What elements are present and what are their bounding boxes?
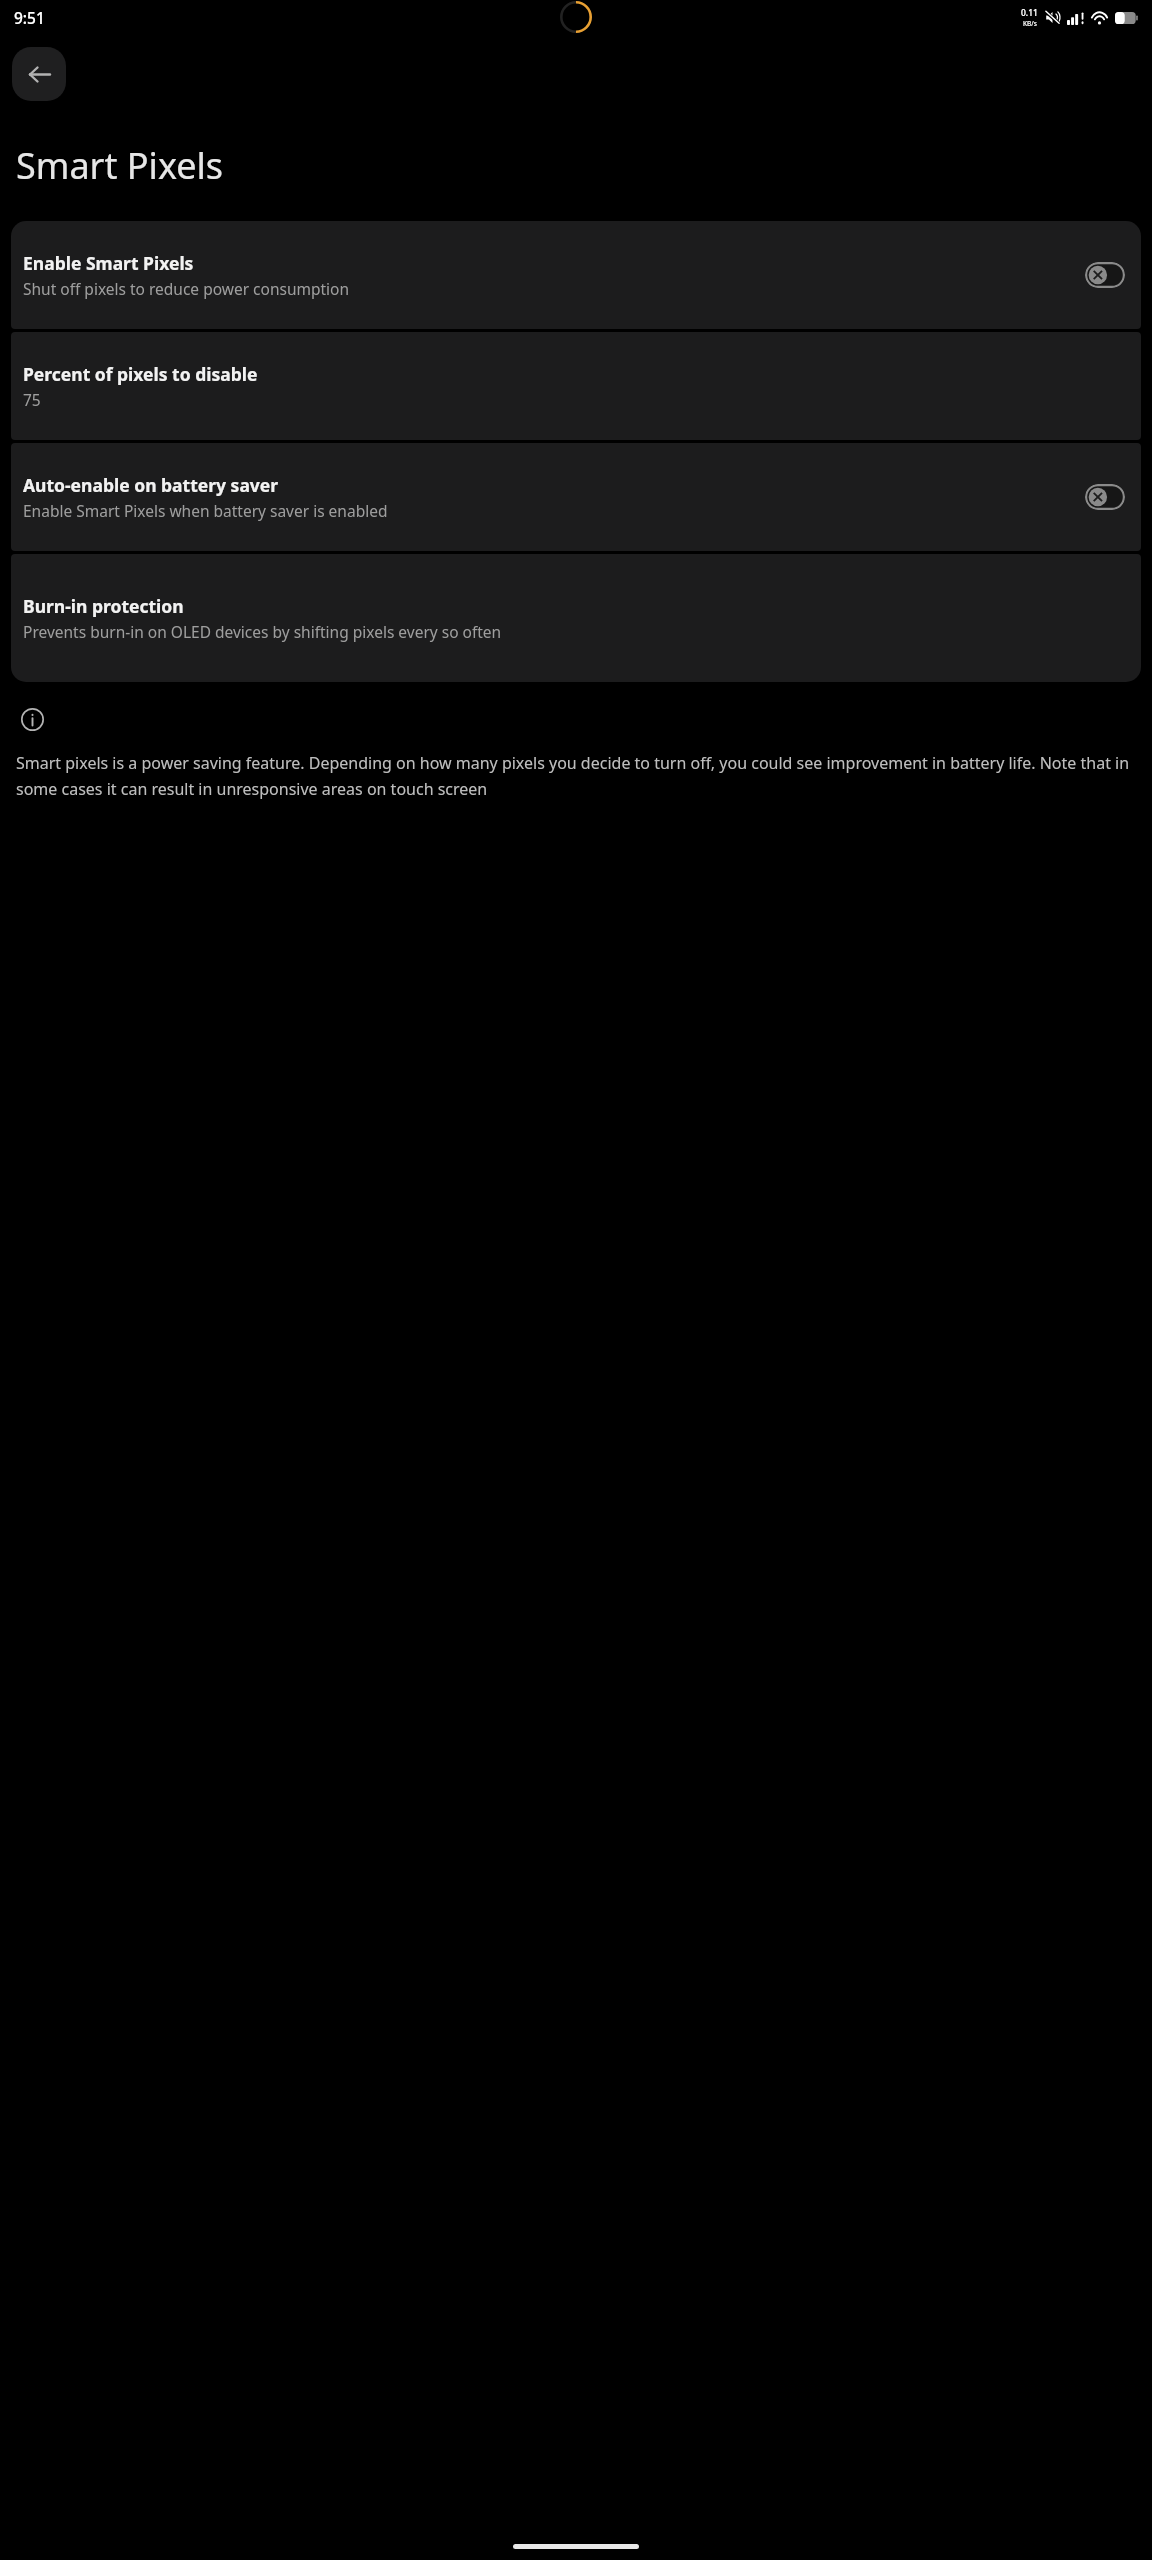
button[interactable]: Percent of pixels to disable [11, 332, 1141, 440]
button[interactable]: Toggle [1085, 484, 1125, 510]
staticText: Prevents burn-in on OLED devices by shif… [23, 621, 502, 642]
staticText: Burn-in protection [23, 594, 184, 618]
staticText: Smart Pixels [16, 141, 224, 190]
button[interactable]: Burn-in protection [11, 554, 1141, 682]
staticText: 9:51 [14, 7, 45, 28]
staticText: 75 [23, 389, 41, 410]
button[interactable]: Auto-enable on battery saver [11, 443, 1141, 551]
staticText: Shut off pixels to reduce power consumpt… [23, 278, 350, 299]
staticText: Enable Smart Pixels [23, 251, 194, 275]
staticText: 0.11 [1021, 7, 1038, 19]
staticText: Enable Smart Pixels when battery saver i… [23, 500, 388, 521]
staticText: Smart pixels is a power saving feature. … [16, 752, 1132, 800]
button[interactable]: Back [12, 47, 66, 101]
staticText: Percent of pixels to disable [23, 362, 258, 386]
staticText: Auto-enable on battery saver [23, 473, 279, 497]
staticText: KB/s [1023, 19, 1037, 28]
button[interactable]: Enable Smart Pixels [11, 221, 1141, 329]
button[interactable]: Toggle [1085, 262, 1125, 288]
